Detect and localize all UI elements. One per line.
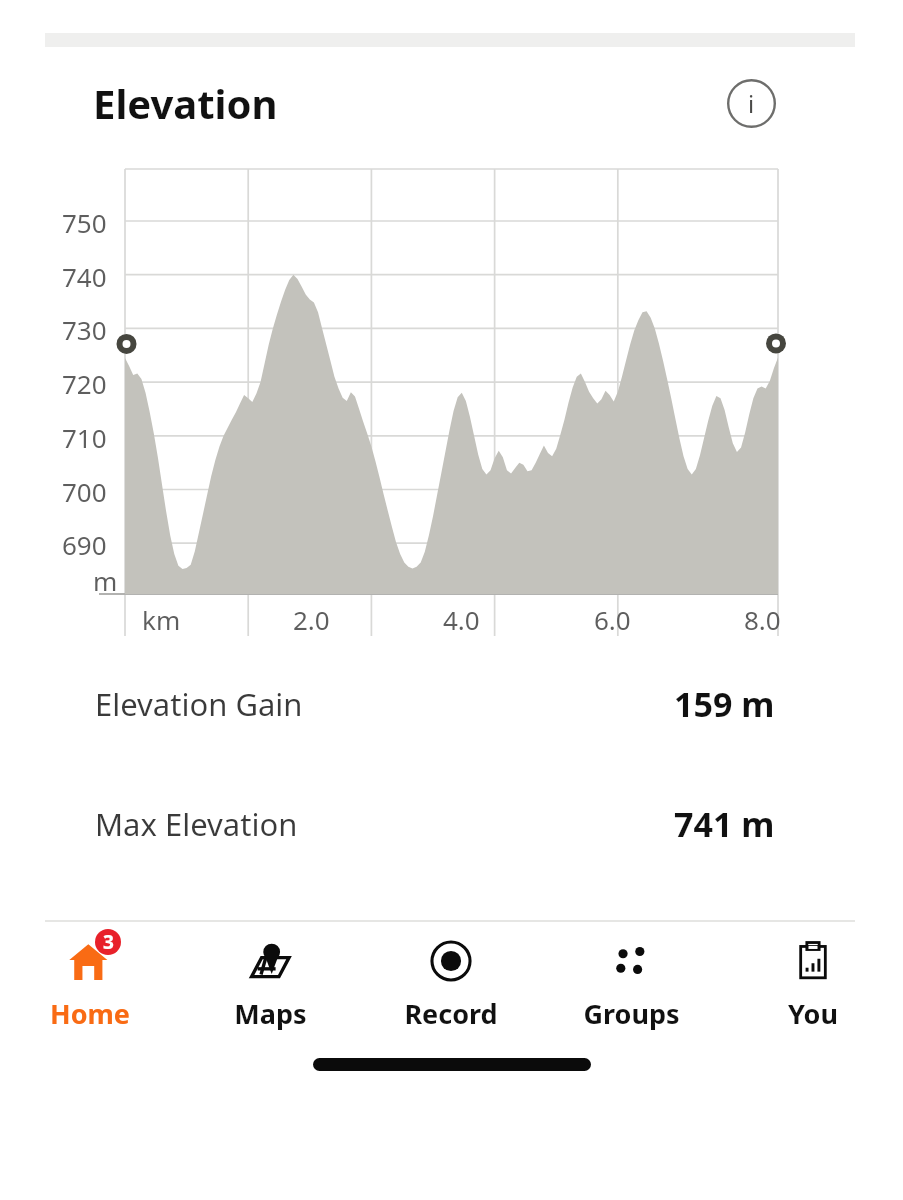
button[interactable]: 3 bbox=[0, 922, 180, 1038]
staticText: 730 bbox=[62, 312, 107, 347]
staticText: Maps bbox=[234, 995, 307, 1032]
staticText: 3 bbox=[103, 929, 114, 955]
staticText: You bbox=[788, 995, 838, 1032]
staticText: 720 bbox=[62, 366, 107, 401]
staticText: 6.0 bbox=[594, 602, 631, 637]
staticText: Record bbox=[404, 995, 498, 1032]
staticText: 8.0 bbox=[744, 602, 781, 637]
staticText: 750 bbox=[62, 205, 107, 240]
button[interactable]: Record bbox=[360, 922, 541, 1038]
staticText: 159 m bbox=[674, 681, 775, 727]
staticText: 740 bbox=[62, 259, 107, 294]
staticText: Max Elevation bbox=[95, 803, 298, 845]
staticText: 741 m bbox=[674, 801, 775, 847]
staticText: Elevation bbox=[93, 76, 278, 130]
button[interactable]: Info about elevation bbox=[725, 77, 777, 129]
staticText: 4.0 bbox=[443, 602, 480, 637]
staticText: Home bbox=[50, 995, 130, 1032]
button[interactable]: Maps bbox=[180, 922, 360, 1038]
button[interactable]: You bbox=[722, 922, 903, 1038]
staticText: 2.0 bbox=[293, 602, 330, 637]
staticText: Elevation Gain bbox=[95, 683, 303, 725]
button[interactable]: Max Elevation bbox=[0, 801, 903, 847]
staticText: 690 bbox=[62, 527, 107, 562]
staticText: i bbox=[748, 87, 755, 120]
button[interactable]: Groups bbox=[541, 922, 722, 1038]
staticText: m bbox=[93, 563, 118, 598]
staticText: km bbox=[142, 602, 181, 637]
staticText: 700 bbox=[62, 474, 107, 509]
button[interactable]: Elevation Gain bbox=[0, 681, 903, 727]
staticText: Groups bbox=[583, 995, 680, 1032]
staticText: 710 bbox=[62, 420, 107, 455]
